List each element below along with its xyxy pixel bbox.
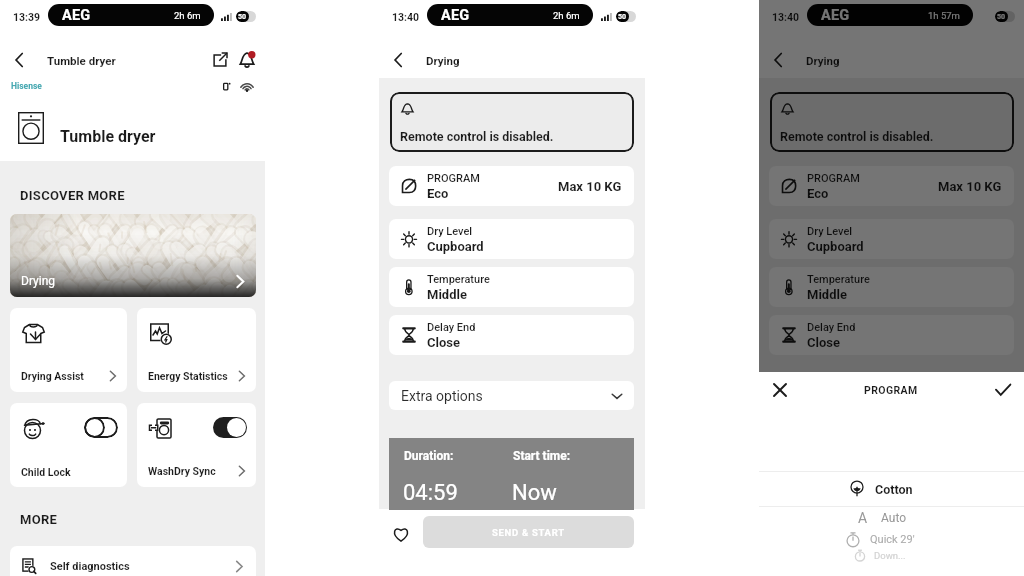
button[interactable]: Drying Assist <box>10 308 127 392</box>
staticText: Cupboard <box>427 239 484 254</box>
button[interactable]: Extra options <box>389 381 634 410</box>
staticText: Temperature <box>427 273 490 286</box>
staticText: AEG <box>821 7 850 24</box>
button[interactable]: Self diagnostics <box>10 546 256 576</box>
staticText: 50 <box>997 13 1006 21</box>
staticText: 13:39 <box>13 11 41 23</box>
staticText: Max 10 KG <box>558 179 622 194</box>
staticText: WashDry Sync <box>148 465 216 477</box>
staticText: 13:40 <box>392 11 420 23</box>
button[interactable]: Share <box>208 48 232 72</box>
button[interactable]: SEND & START <box>423 516 634 548</box>
button[interactable]: Delay End <box>389 315 634 355</box>
button[interactable]: Back <box>385 47 411 73</box>
button[interactable]: Toggle on <box>213 417 247 438</box>
staticText: DISCOVER MORE <box>20 188 125 203</box>
button[interactable]: Notifications <box>235 48 259 72</box>
button[interactable]: Back <box>765 47 791 73</box>
button[interactable]: Confirm <box>992 379 1014 401</box>
button[interactable]: Toggle on <box>137 403 256 487</box>
staticText: PROGRAM <box>807 172 860 185</box>
button[interactable]: PROGRAM <box>389 166 634 206</box>
staticText: Eco <box>427 186 449 201</box>
staticText: 1h 57m <box>928 10 960 21</box>
button[interactable]: Remote control is disabled. <box>770 92 1014 152</box>
button[interactable]: Cotton <box>747 472 1012 506</box>
staticText: Close <box>427 335 460 350</box>
staticText: Energy Statistics <box>148 370 228 382</box>
staticText: Tumble dryer <box>60 127 156 146</box>
staticText: Down... <box>874 550 906 561</box>
button[interactable]: Drying <box>10 214 256 297</box>
staticText: MORE <box>20 512 58 527</box>
staticText: Middle <box>807 287 847 302</box>
button[interactable]: Quick 29' <box>747 528 1012 550</box>
button[interactable]: Close <box>769 379 791 401</box>
button[interactable]: PROGRAM <box>769 166 1014 206</box>
staticText: Cupboard <box>807 239 864 254</box>
staticText: Drying Assist <box>21 370 84 382</box>
staticText: Quick 29' <box>870 533 915 546</box>
staticText: Temperature <box>807 273 870 286</box>
button[interactable]: Toggle off <box>84 417 118 438</box>
staticText: Max 10 KG <box>938 179 1002 194</box>
staticText: Drying <box>21 274 56 288</box>
staticText: 50 <box>238 13 247 21</box>
button[interactable]: Delay End <box>769 315 1014 355</box>
staticText: Eco <box>807 186 829 201</box>
staticText: Now <box>512 480 557 506</box>
button[interactable]: Energy Statistics <box>137 308 256 392</box>
staticText: Auto <box>881 511 907 525</box>
staticText: Dry Level <box>807 225 853 238</box>
staticText: Tumble dryer <box>47 54 116 67</box>
staticText: Drying <box>426 54 460 67</box>
staticText: Self diagnostics <box>50 560 130 573</box>
staticText: Duration: <box>404 449 454 463</box>
staticText: PROGRAM <box>864 384 918 396</box>
staticText: 2h 6m <box>553 10 580 21</box>
staticText: Middle <box>427 287 467 302</box>
staticText: Start time: <box>513 449 571 463</box>
button[interactable]: Back <box>6 47 32 73</box>
button[interactable]: Dry Level <box>769 219 1014 259</box>
staticText: SEND & START <box>492 527 565 538</box>
staticText: A <box>858 510 868 526</box>
staticText: PROGRAM <box>427 172 480 185</box>
staticText: 50 <box>618 13 627 21</box>
button[interactable]: Dry Level <box>389 219 634 259</box>
staticText: Child Lock <box>21 466 71 478</box>
button[interactable]: Favourite <box>390 523 412 545</box>
button[interactable]: Temperature <box>769 267 1014 307</box>
staticText: 04:59 <box>403 480 458 506</box>
staticText: Cotton <box>875 482 913 497</box>
staticText: Delay End <box>807 321 856 334</box>
staticText: AEG <box>62 7 91 24</box>
staticText: Dry Level <box>427 225 473 238</box>
staticText: Hisense <box>11 81 42 91</box>
staticText: 13:40 <box>772 11 800 23</box>
staticText: AEG <box>441 7 470 24</box>
staticText: Remote control is disabled. <box>400 129 554 144</box>
button[interactable]: Temperature <box>389 267 634 307</box>
staticText: Delay End <box>427 321 476 334</box>
staticText: Close <box>807 335 840 350</box>
button[interactable]: Remote control is disabled. <box>390 92 634 152</box>
staticText: Remote control is disabled. <box>780 129 934 144</box>
button[interactable]: A <box>747 506 1012 530</box>
staticText: 2h 6m <box>174 10 201 21</box>
button[interactable]: Toggle off <box>10 403 127 487</box>
staticText: Extra options <box>401 388 483 404</box>
staticText: Drying <box>806 54 840 67</box>
